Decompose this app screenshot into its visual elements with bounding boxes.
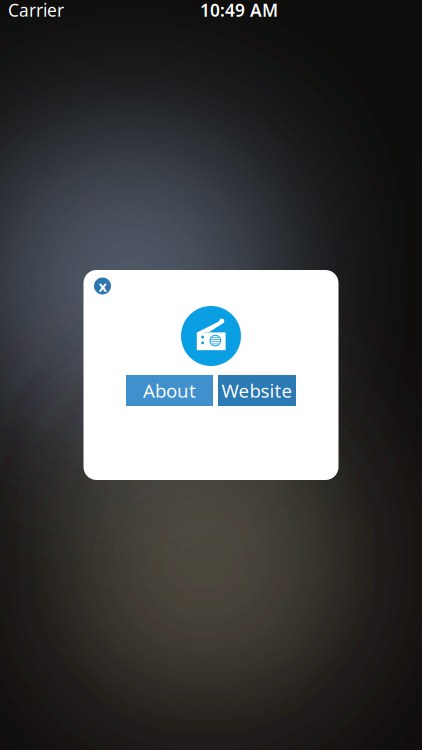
staticText: x [98,276,106,296]
button[interactable]: About [126,375,213,406]
staticText: Carrier [8,0,64,21]
button[interactable]: Website [218,375,296,406]
staticText: 10:49 AM [200,0,278,21]
staticText: Website [221,378,292,403]
button[interactable]: Close [88,272,116,300]
staticText: About [143,378,196,403]
